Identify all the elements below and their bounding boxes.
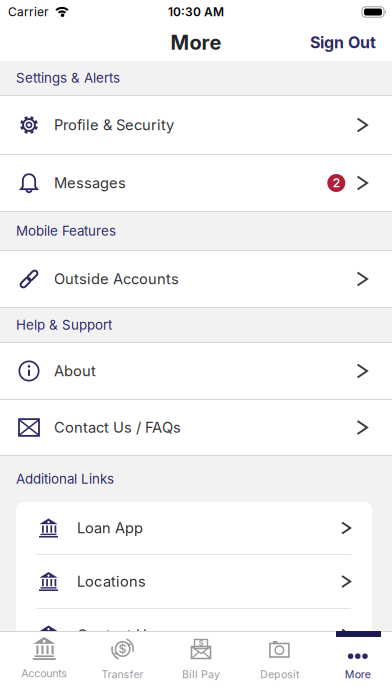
staticText: Deposit <box>260 668 299 681</box>
staticText: 2 <box>333 176 340 190</box>
staticText: Carrier <box>8 5 49 19</box>
button[interactable]: Accounts <box>5 637 83 681</box>
staticText: Accounts <box>21 667 67 680</box>
button[interactable]: More <box>319 637 392 681</box>
staticText: Contact Us / FAQs <box>54 419 181 436</box>
staticText: Contact Us <box>77 626 155 644</box>
staticText: About <box>54 362 96 380</box>
button[interactable]: About <box>0 343 392 399</box>
button[interactable]: Contact Us <box>16 609 372 661</box>
button[interactable]: Profile & Security <box>0 96 392 154</box>
button[interactable]: Outside Accounts <box>0 251 392 307</box>
button[interactable]: Contact Us / FAQs <box>0 400 392 455</box>
button[interactable]: $ <box>162 637 240 681</box>
staticText: 10:30 AM <box>168 5 224 19</box>
button[interactable]: $ <box>83 637 162 681</box>
staticText: $ <box>119 642 127 656</box>
staticText: Loan App <box>77 519 143 537</box>
button[interactable]: Locations <box>16 555 372 608</box>
staticText: Messages <box>54 174 126 192</box>
button[interactable]: Deposit <box>240 637 319 681</box>
staticText: Help & Support <box>16 317 112 333</box>
staticText: Outside Accounts <box>54 270 179 288</box>
button[interactable]: Messages <box>0 155 392 211</box>
staticText: More <box>345 668 371 681</box>
staticText: Bill Pay <box>182 668 220 681</box>
staticText: Settings & Alerts <box>16 70 120 86</box>
staticText: More <box>170 31 221 54</box>
staticText: Locations <box>77 573 146 590</box>
staticText: Additional Links <box>16 471 114 487</box>
button[interactable]: Sign Out <box>310 33 376 52</box>
staticText: Mobile Features <box>16 223 116 239</box>
staticText: $ <box>198 638 203 648</box>
staticText: Transfer <box>102 668 144 681</box>
staticText: Sign Out <box>310 33 376 52</box>
staticText: Profile & Security <box>54 116 174 134</box>
button[interactable]: Loan App <box>16 502 372 554</box>
